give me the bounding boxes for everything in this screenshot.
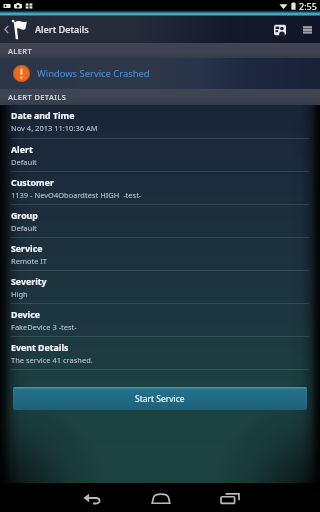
button[interactable]: Alert Details <box>11 16 320 43</box>
staticText: ALERT DETAILS <box>8 92 67 102</box>
staticText: 1139 - NevO4Oboardtest HIGH -test- <box>11 190 142 200</box>
staticText: High <box>11 289 28 299</box>
staticText: Severity <box>11 276 47 288</box>
staticText: Alert <box>11 144 33 156</box>
button[interactable]: Customer <box>0 172 320 205</box>
staticText: Default <box>11 157 37 167</box>
button[interactable]: Event Details <box>0 337 320 370</box>
button[interactable]: Windows Service Crashed <box>0 58 320 89</box>
button[interactable]: More options <box>294 16 320 43</box>
button[interactable]: Contacts <box>266 16 294 43</box>
staticText: Remote IT <box>11 256 48 266</box>
staticText: Date and Time <box>11 110 75 122</box>
staticText: The service 41 crashed. <box>11 355 93 365</box>
button[interactable]: Date and Time <box>0 105 320 139</box>
button[interactable]: Group <box>0 205 320 238</box>
button[interactable]: Home <box>136 483 185 512</box>
staticText: Event Details <box>11 342 69 354</box>
staticText: Start Service <box>135 393 185 405</box>
staticText: Nov 4, 2013 11:10:36 AM <box>11 123 98 133</box>
button[interactable]: Service <box>0 238 320 271</box>
staticText: Default <box>11 223 37 233</box>
button[interactable]: Alert <box>0 139 320 172</box>
button[interactable]: Device <box>0 304 320 337</box>
staticText: Device <box>11 309 40 321</box>
staticText: 2:55 <box>299 0 317 12</box>
button[interactable]: Back <box>0 16 12 43</box>
staticText: FakeDevice 3 -test- <box>11 322 77 332</box>
staticText: Customer <box>11 177 54 189</box>
button[interactable]: Back <box>67 483 116 512</box>
staticText: ALERT <box>8 46 33 56</box>
staticText: Windows Service Crashed <box>37 67 150 80</box>
staticText: Service <box>11 243 43 255</box>
button[interactable]: Recent apps <box>205 483 254 512</box>
staticText: Group <box>11 210 38 222</box>
button[interactable]: Severity <box>0 271 320 304</box>
staticText: Alert Details <box>35 23 89 36</box>
button[interactable]: Start Service <box>13 387 307 410</box>
